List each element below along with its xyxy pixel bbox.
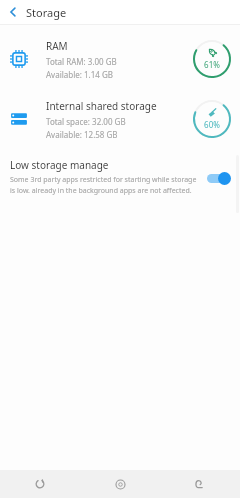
button[interactable]: Internal shared storage — [0, 90, 240, 148]
button[interactable]: Back — [0, 0, 26, 24]
staticText: Total RAM: 3.00 GB — [46, 56, 117, 67]
staticText: 61% — [204, 59, 220, 70]
staticText: Total space: 32.00 GB — [46, 116, 126, 127]
staticText: Available: 12.58 GB — [46, 129, 118, 140]
staticText: Low storage manage — [10, 158, 109, 172]
button[interactable]: Low storage manage toggle — [206, 170, 232, 186]
staticText: Available: 1.14 GB — [46, 69, 113, 80]
button[interactable]: Home — [80, 470, 160, 498]
button[interactable]: Low storage manage — [0, 156, 240, 201]
staticText: Some 3rd party apps restricted for start… — [10, 175, 200, 195]
staticText: Storage — [26, 5, 67, 20]
staticText: 60% — [204, 119, 220, 130]
staticText: Internal shared storage — [46, 99, 157, 113]
button[interactable]: Clean up — [192, 39, 232, 79]
button[interactable]: Recent apps — [0, 470, 80, 498]
staticText: RAM — [46, 39, 68, 53]
button[interactable]: RAM — [0, 30, 240, 88]
button[interactable]: Clean up — [192, 99, 232, 139]
button[interactable]: Back — [160, 470, 240, 498]
